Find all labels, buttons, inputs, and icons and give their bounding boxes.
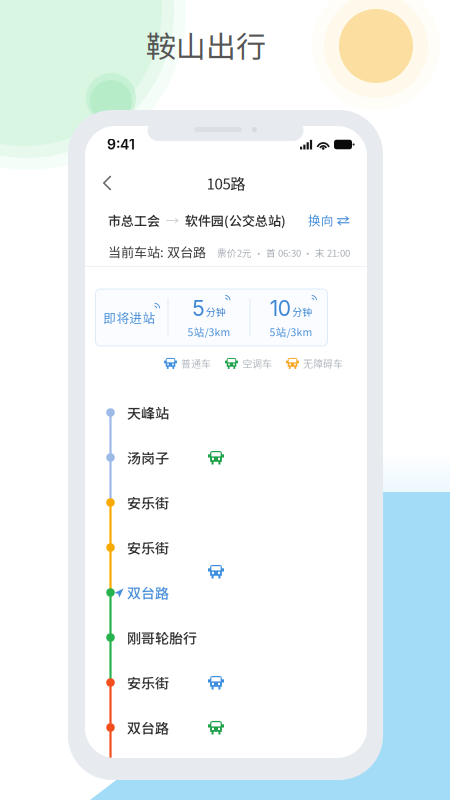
button[interactable]: 安乐街 [85,660,367,705]
button[interactable]: 换向 [308,211,350,229]
staticText: 安乐街 [127,672,169,693]
staticText: 105路 [206,172,245,194]
button[interactable]: 安乐街 [85,525,367,570]
button[interactable]: 刚哥轮胎行 [85,615,367,660]
staticText: 无障碍车 [303,356,343,370]
staticText: 当前车站: 双台路 [108,242,206,261]
button[interactable]: 安乐街 [85,480,367,525]
button[interactable]: Back [90,166,124,200]
staticText: 票价2元 · 首 06:30 · 末 21:00 [217,246,350,259]
staticText: 空调车 [242,356,272,370]
staticText: 市总工会 [108,211,160,229]
staticText: 鞍山出行 [146,23,266,66]
staticText: 普通车 [181,356,211,370]
button[interactable]: 天峰站 [85,390,367,435]
staticText: 5站/3km [187,324,230,339]
staticText: 软件园(公交总站) [185,211,286,229]
button[interactable]: 汤岗子 [85,435,367,480]
staticText: 安乐街 [127,492,169,513]
staticText: 双台路 [127,582,169,603]
staticText: 刚哥轮胎行 [127,627,197,648]
button[interactable]: 双台路 [85,705,367,750]
staticText: 换向 [308,211,334,229]
staticText: 即将进站 [103,308,155,327]
staticText: 双台路 [127,717,169,738]
staticText: 分钟 [292,304,312,319]
staticText: 5 [192,296,204,321]
staticText: 9:41 [107,136,135,153]
staticText: 安乐街 [127,537,169,558]
staticText: 天峰站 [127,402,169,423]
button[interactable]: 双台路 [85,570,367,615]
staticText: 分钟 [206,304,226,319]
staticText: 汤岗子 [127,447,169,468]
staticText: 10 [270,296,291,321]
staticText: 5站/3km [269,324,312,339]
